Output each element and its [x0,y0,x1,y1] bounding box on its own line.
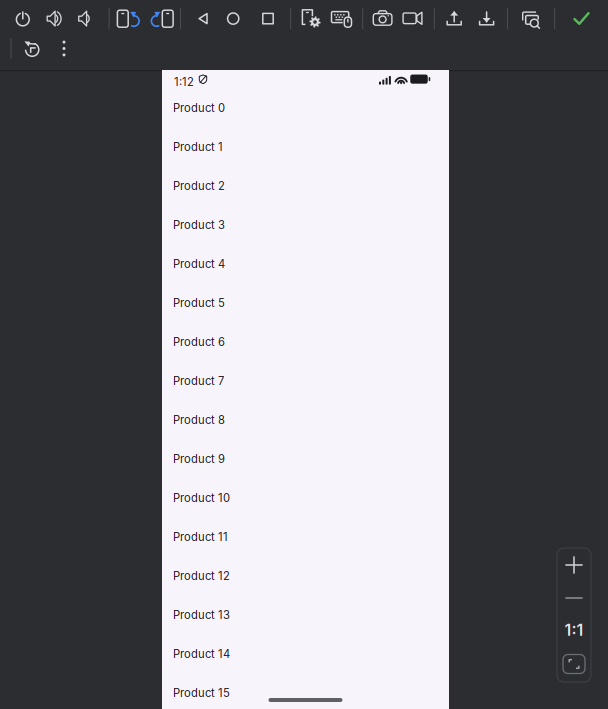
staticText: Product 10 [173,491,230,505]
button[interactable]: Product 13 [162,595,449,634]
button[interactable]: Product 4 [162,244,449,283]
button[interactable]: Product 2 [162,166,449,205]
button[interactable]: Product 7 [162,361,449,400]
button[interactable]: Product 10 [162,478,449,517]
staticText: Product 5 [173,296,225,310]
button[interactable]: Keyboard and mouse [329,6,355,32]
staticText: Product 11 [173,530,228,544]
button[interactable]: Reset [19,35,45,61]
staticText: Product 12 [173,569,230,583]
staticText: 1:12 [174,75,194,89]
button[interactable]: Product 1 [162,127,449,166]
button[interactable]: Product 5 [162,283,449,322]
button[interactable]: Product 0 [162,88,449,127]
staticText: Product 2 [173,179,225,193]
button[interactable]: Product 11 [162,517,449,556]
staticText: Product 14 [173,647,230,661]
button[interactable]: Volume up [42,6,68,32]
staticText: Product 8 [173,413,225,427]
button[interactable]: Volume down [73,6,99,32]
button[interactable]: Layout inspector [517,6,543,32]
button[interactable]: Product 9 [162,439,449,478]
button[interactable]: 1:1 [557,614,591,646]
staticText: Product 15 [173,686,230,700]
button[interactable]: Back [190,6,216,32]
button[interactable]: Rotate right [148,6,174,32]
staticText: Product 9 [173,452,225,466]
staticText: Product 13 [173,608,230,622]
button[interactable]: Done [568,6,594,32]
staticText: Product 4 [173,257,225,271]
button[interactable]: Record screen [400,6,426,32]
staticText: Product 0 [173,101,225,115]
button[interactable]: Device settings [299,6,325,32]
button[interactable]: Power [10,6,36,32]
staticText: Product 7 [173,374,224,388]
button[interactable]: Zoom in [557,548,591,582]
button[interactable]: Rotate left [116,6,142,32]
button[interactable]: Download [474,6,500,32]
button[interactable]: Product 14 [162,634,449,673]
button[interactable]: Product 12 [162,556,449,595]
staticText: 1:1 [564,620,583,640]
button[interactable]: Product 15 [162,673,449,709]
button[interactable]: Screenshot [370,6,396,32]
staticText: Product 1 [173,140,223,154]
button[interactable]: Zoom out [557,582,591,614]
button[interactable]: Product 3 [162,205,449,244]
button[interactable]: Upload [441,6,467,32]
button[interactable]: Home [220,6,246,32]
staticText: Product 3 [173,218,225,232]
button[interactable]: Product 6 [162,322,449,361]
button[interactable]: More options [51,35,77,61]
staticText: Product 6 [173,335,225,349]
button[interactable]: Product 8 [162,400,449,439]
button[interactable]: Fit to screen [557,646,591,682]
button[interactable]: Recents [255,6,281,32]
